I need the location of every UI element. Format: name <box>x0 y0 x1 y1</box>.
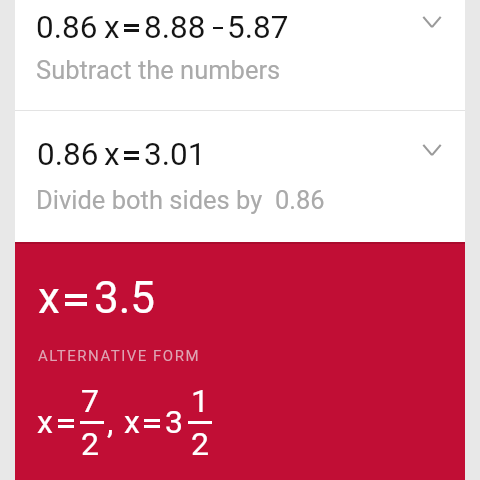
staticText: 5.87 <box>227 9 289 46</box>
staticText: x <box>38 272 60 324</box>
staticText: 3.5 <box>94 272 156 324</box>
staticText: x <box>104 136 120 173</box>
staticText: Subtract the numbers <box>36 55 281 85</box>
button[interactable]: 0.86 <box>15 111 465 242</box>
staticText: x <box>124 403 140 441</box>
staticText: Divide both sides by 0.86 <box>36 185 325 215</box>
staticText: 0.86 <box>36 9 98 46</box>
staticText: 8.88 <box>144 9 206 46</box>
staticText: x <box>104 9 120 46</box>
staticText: ALTERNATIVE FORM <box>38 347 201 365</box>
staticText: 3 <box>165 403 183 441</box>
staticText: 1 <box>191 382 209 420</box>
staticText: 2 <box>191 425 209 463</box>
other: Expand step <box>416 6 448 38</box>
staticText: 2 <box>81 425 99 463</box>
staticText: 0.86 <box>37 136 99 173</box>
staticText: 7 <box>81 382 99 420</box>
staticText: , <box>107 403 114 441</box>
other: Expand step <box>416 134 448 166</box>
button[interactable]: 0.86 <box>15 0 465 110</box>
staticText: 3.01 <box>144 136 206 173</box>
staticText: x <box>37 403 53 441</box>
